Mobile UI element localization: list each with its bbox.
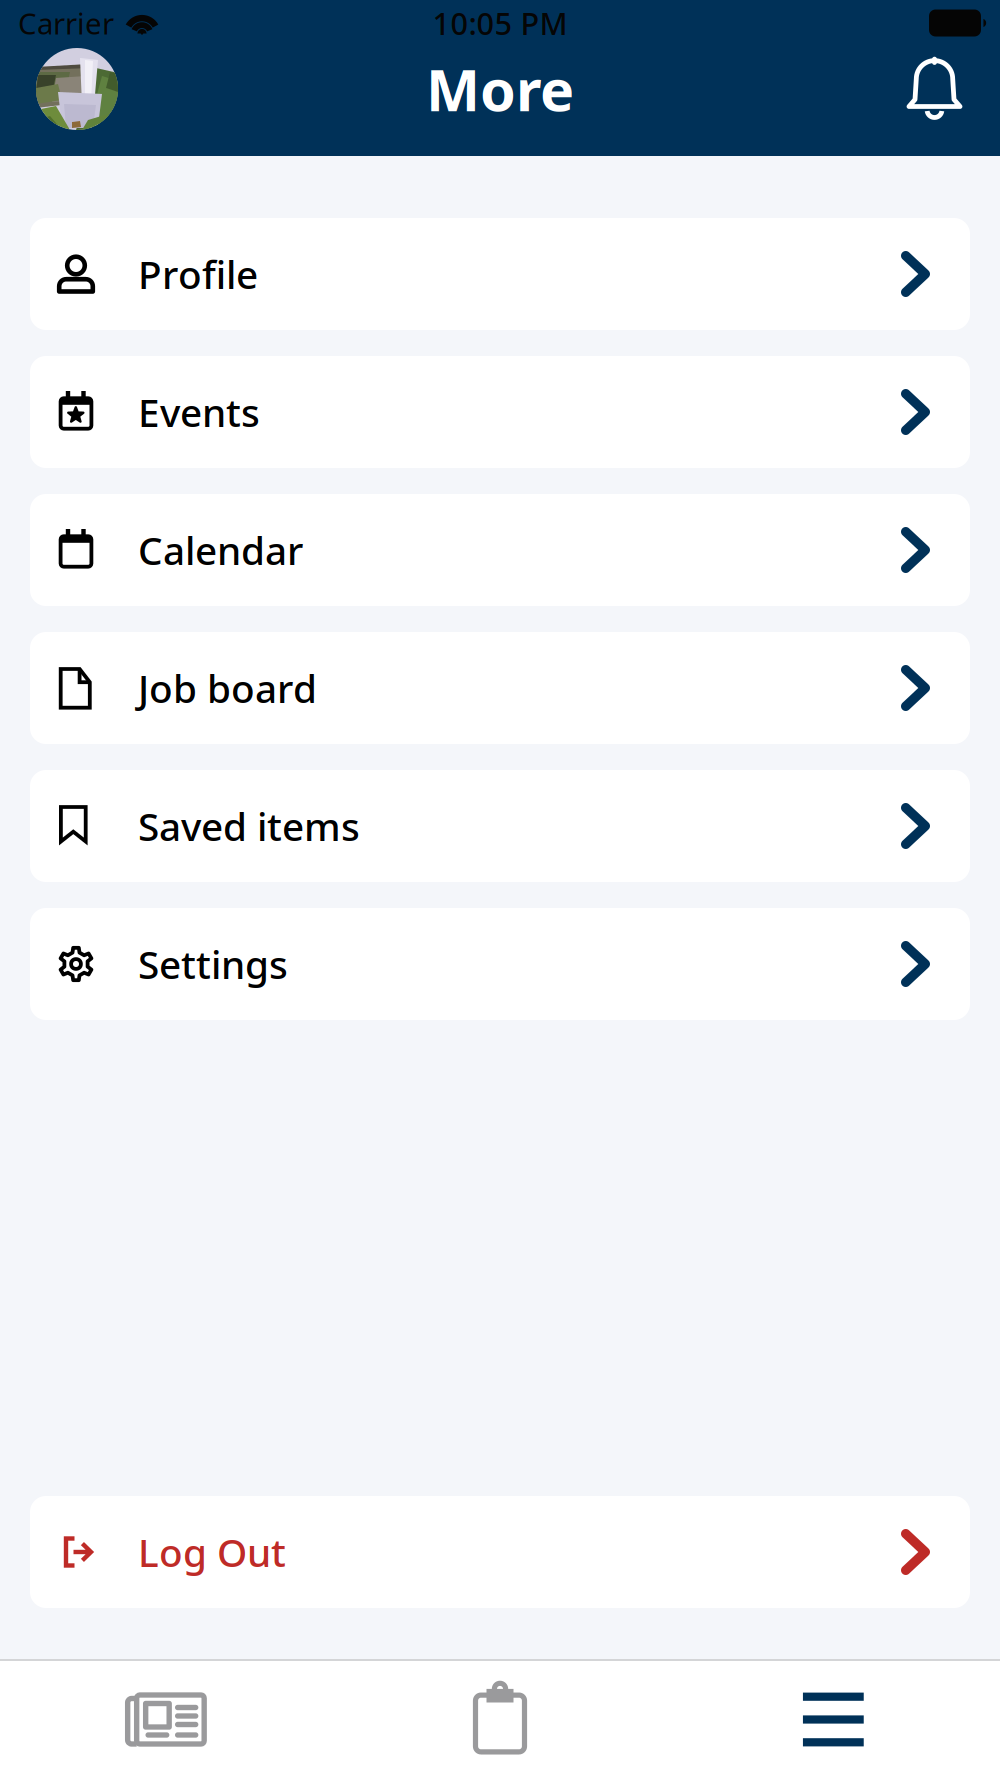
staticText: Job board <box>138 662 317 714</box>
staticText: Log Out <box>138 1526 286 1578</box>
staticText: More <box>426 51 574 127</box>
staticText: 10:05 PM <box>432 3 567 43</box>
staticText: Carrier <box>18 3 114 42</box>
staticText: Settings <box>138 938 288 990</box>
button[interactable]: Job board <box>30 632 970 744</box>
staticText: Calendar <box>138 524 303 576</box>
button[interactable]: Events <box>30 356 970 468</box>
staticText: Profile <box>138 248 258 300</box>
button[interactable]: Profile <box>30 218 970 330</box>
button[interactable]: News <box>0 1688 333 1750</box>
button[interactable]: Calendar <box>30 494 970 606</box>
staticText: Events <box>138 386 260 438</box>
button[interactable]: Saved items <box>30 770 970 882</box>
button[interactable]: Profile photo <box>36 48 118 130</box>
button[interactable]: Settings <box>30 908 970 1020</box>
button[interactable]: Log Out <box>30 1496 970 1608</box>
button[interactable]: Board <box>333 1681 667 1757</box>
button[interactable]: Notifications <box>906 56 963 121</box>
staticText: Saved items <box>138 800 360 852</box>
button[interactable]: More <box>667 1691 1000 1747</box>
